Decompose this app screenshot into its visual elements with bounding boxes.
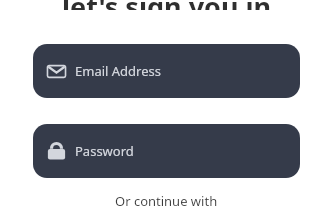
staticText: Or continue with	[115, 192, 218, 210]
button[interactable]: Email Address input field	[33, 44, 300, 98]
staticText: Email Address	[75, 62, 161, 80]
staticText: Password	[75, 142, 134, 160]
staticText: let's sign you in	[62, 0, 272, 10]
button[interactable]: Password input field	[33, 124, 300, 178]
